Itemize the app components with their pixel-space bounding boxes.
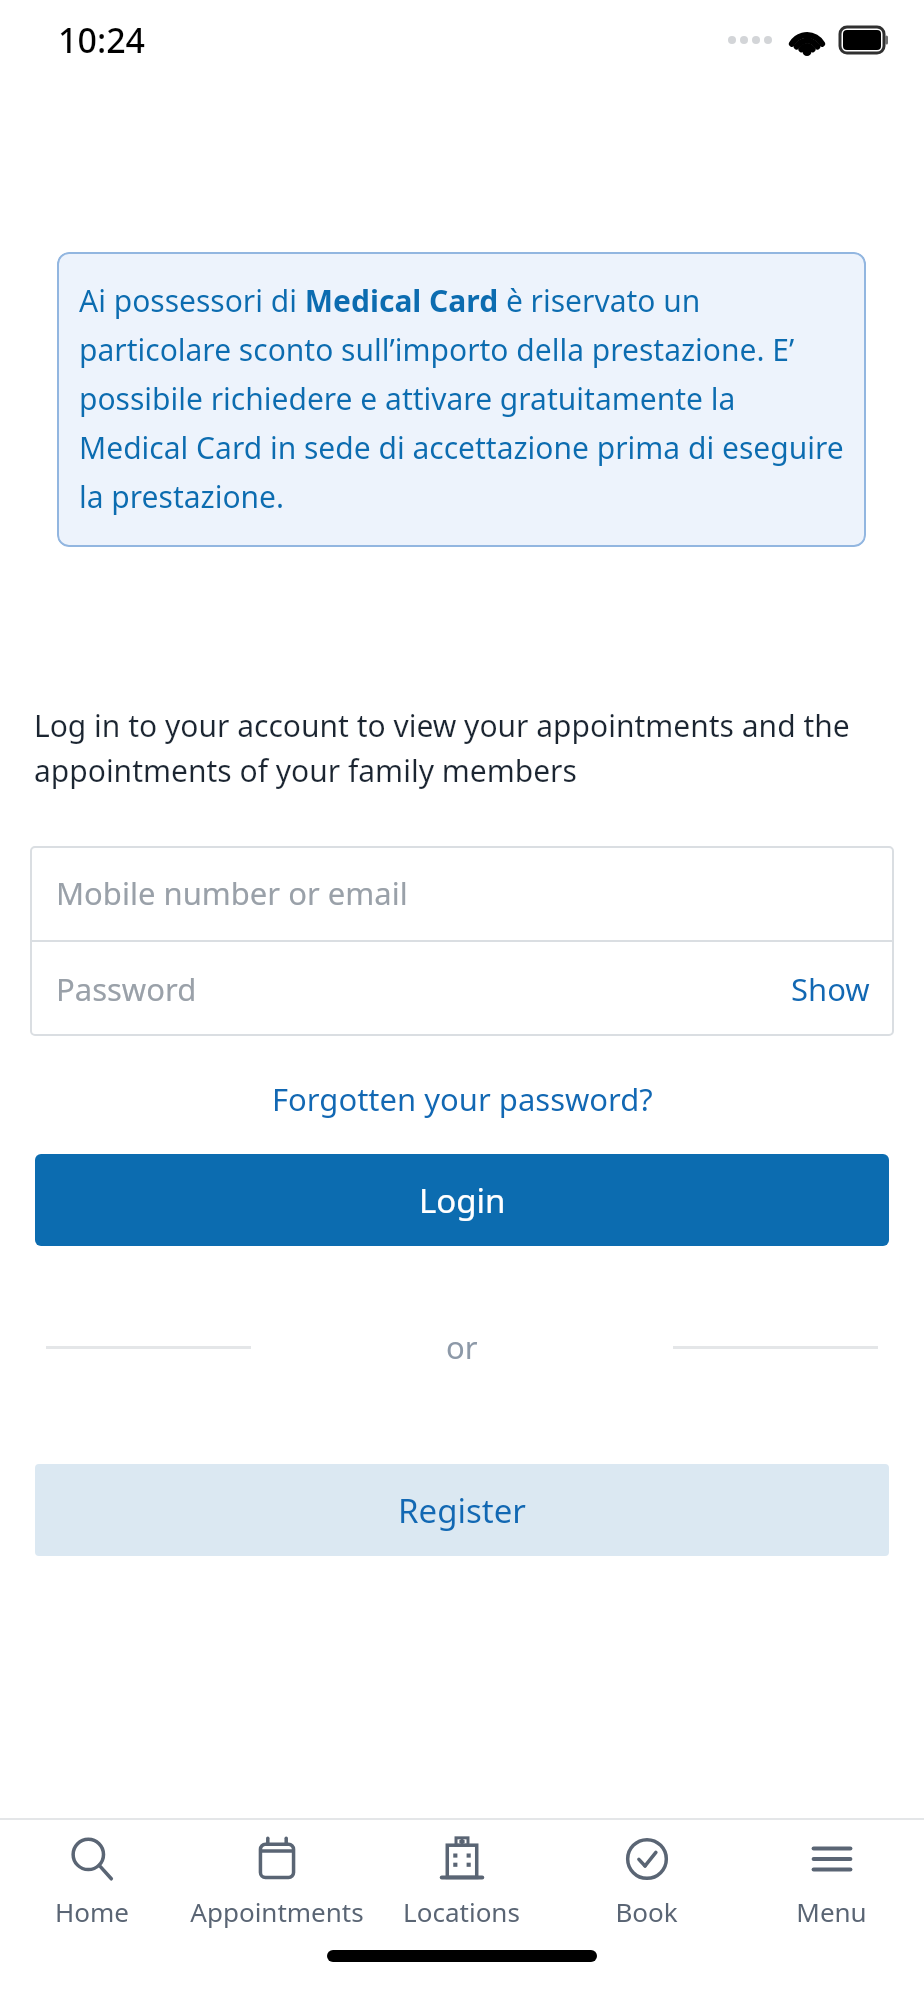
button[interactable]: Show [767, 954, 894, 1024]
other: Menu [809, 1836, 855, 1882]
other: Locations [439, 1836, 485, 1882]
staticText: Show [791, 968, 870, 1010]
staticText: Login [419, 1178, 506, 1223]
button[interactable]: Password [30, 942, 894, 1036]
staticText: Locations [403, 1894, 520, 1929]
staticText: Password [56, 968, 197, 1010]
button[interactable]: Locations [369, 1820, 554, 1940]
other: Appointments [254, 1836, 300, 1882]
staticText: Log in to your account to view your appo… [34, 705, 880, 790]
button[interactable]: Login [35, 1154, 889, 1246]
button[interactable]: Appointments [184, 1820, 369, 1940]
button[interactable]: Home [0, 1820, 184, 1940]
staticText: Ai possessori di Medical Card è riservat… [79, 280, 848, 517]
staticText: Forgotten your password? [272, 1078, 653, 1120]
button[interactable]: Forgotten your password? [248, 1070, 677, 1128]
staticText: Mobile number or email [56, 872, 408, 914]
button[interactable]: Book [554, 1820, 739, 1940]
button[interactable]: Mobile number or email [30, 846, 894, 940]
staticText: 10:24 [58, 17, 146, 63]
staticText: Menu [796, 1894, 867, 1929]
staticText: Appointments [190, 1894, 364, 1929]
staticText: Register [398, 1488, 526, 1533]
button[interactable]: Menu [739, 1820, 924, 1940]
staticText: Book [615, 1894, 678, 1929]
staticText: or [446, 1326, 478, 1368]
staticText: Home [55, 1894, 129, 1929]
button[interactable]: Register [35, 1464, 889, 1556]
other: Book [624, 1836, 670, 1882]
other: Home [69, 1836, 115, 1882]
